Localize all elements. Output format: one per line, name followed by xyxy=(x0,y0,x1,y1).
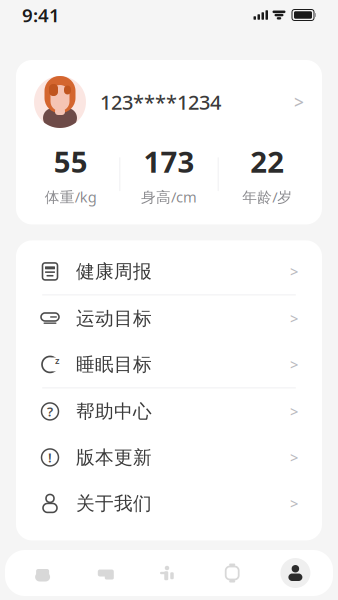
button[interactable]: Profile xyxy=(264,551,327,595)
button[interactable]: Device xyxy=(201,551,264,595)
staticText: > xyxy=(294,90,304,113)
staticText: > xyxy=(290,494,298,513)
button[interactable]: ! xyxy=(16,434,322,480)
staticText: 关于我们 xyxy=(76,492,152,515)
button[interactable]: 关于我们 xyxy=(16,480,322,526)
staticText: > xyxy=(290,309,298,328)
staticText: > xyxy=(290,355,298,374)
staticText: 年龄/岁 xyxy=(242,187,292,206)
button[interactable]: Home xyxy=(11,551,74,595)
staticText: ! xyxy=(48,449,52,466)
staticText: 帮助中心 xyxy=(76,400,152,423)
staticText: 运动目标 xyxy=(76,307,152,330)
staticText: 睡眠目标 xyxy=(76,353,152,376)
button[interactable]: 运动目标 xyxy=(16,295,322,341)
button[interactable]: z xyxy=(16,341,322,387)
staticText: ? xyxy=(47,403,53,420)
staticText: > xyxy=(290,448,298,467)
button[interactable]: Activity xyxy=(137,551,201,595)
button[interactable]: 健康周报 xyxy=(16,248,322,294)
staticText: 55 xyxy=(54,142,88,181)
staticText: 123****1234 xyxy=(100,89,221,115)
staticText: 9:41 xyxy=(22,3,60,27)
staticText: 体重/kg xyxy=(45,187,97,206)
staticText: > xyxy=(290,402,298,421)
staticText: 22 xyxy=(250,142,284,181)
button[interactable]: 123****1234 xyxy=(16,60,322,138)
staticText: z xyxy=(55,354,60,367)
staticText: 健康周报 xyxy=(76,260,152,283)
button[interactable]: ? xyxy=(16,388,322,434)
staticText: 版本更新 xyxy=(76,446,152,469)
button[interactable]: Discover xyxy=(74,551,137,595)
staticText: 173 xyxy=(143,142,194,181)
staticText: > xyxy=(290,262,298,281)
staticText: 身高/cm xyxy=(141,187,197,206)
